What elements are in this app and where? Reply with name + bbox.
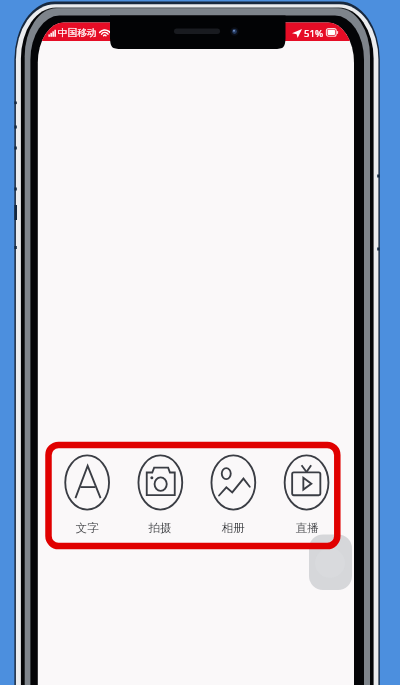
- staticText: 文字: [75, 521, 99, 536]
- staticText: 相册: [221, 521, 245, 536]
- staticText: 直播: [295, 521, 319, 536]
- button[interactable]: 拍摄: [135, 452, 185, 530]
- staticText: 中国移动: [58, 27, 97, 39]
- staticText: 拍摄: [148, 521, 172, 536]
- button[interactable]: 文字: [62, 452, 112, 530]
- button[interactable]: 相册: [208, 452, 258, 530]
- staticText: 51%: [304, 27, 324, 40]
- button[interactable]: 直播: [282, 452, 332, 530]
